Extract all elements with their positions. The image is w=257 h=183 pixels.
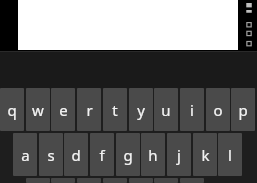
staticText: o <box>213 100 223 120</box>
button[interactable]: o <box>206 88 230 131</box>
button[interactable]: h <box>141 133 165 176</box>
staticText: h <box>148 145 158 165</box>
staticText: p <box>238 100 248 120</box>
button[interactable]: a <box>13 133 37 176</box>
staticText: i <box>190 100 194 120</box>
button[interactable]: r <box>77 88 101 131</box>
staticText: f <box>99 145 105 165</box>
staticText: g <box>123 145 133 165</box>
button[interactable]: j <box>167 133 191 176</box>
button[interactable]: e <box>51 88 75 131</box>
staticText: s <box>47 145 55 165</box>
staticText: a <box>21 145 30 165</box>
button[interactable]: d <box>64 133 88 176</box>
button[interactable]: l <box>218 133 242 176</box>
button[interactable]: s <box>39 133 63 176</box>
button[interactable]: w <box>26 88 50 131</box>
button[interactable]: q <box>0 88 24 131</box>
other: Status bar <box>238 0 257 51</box>
button[interactable]: u <box>154 88 178 131</box>
staticText: w <box>32 100 44 120</box>
staticText: t <box>112 100 118 120</box>
staticText: d <box>71 145 81 165</box>
button[interactable]: k <box>193 133 217 176</box>
staticText: u <box>161 100 171 120</box>
button[interactable]: p <box>231 88 255 131</box>
staticText: y <box>137 100 145 120</box>
button[interactable]: i <box>180 88 204 131</box>
staticText: r <box>86 100 93 120</box>
button[interactable]: g <box>116 133 140 176</box>
staticText: j <box>177 145 181 165</box>
button[interactable]: f <box>90 133 114 176</box>
staticText: k <box>201 145 210 165</box>
button[interactable]: t <box>103 88 127 131</box>
button[interactable]: y <box>129 88 153 131</box>
staticText: q <box>7 100 17 120</box>
staticText: l <box>228 145 232 165</box>
staticText: e <box>59 100 68 120</box>
